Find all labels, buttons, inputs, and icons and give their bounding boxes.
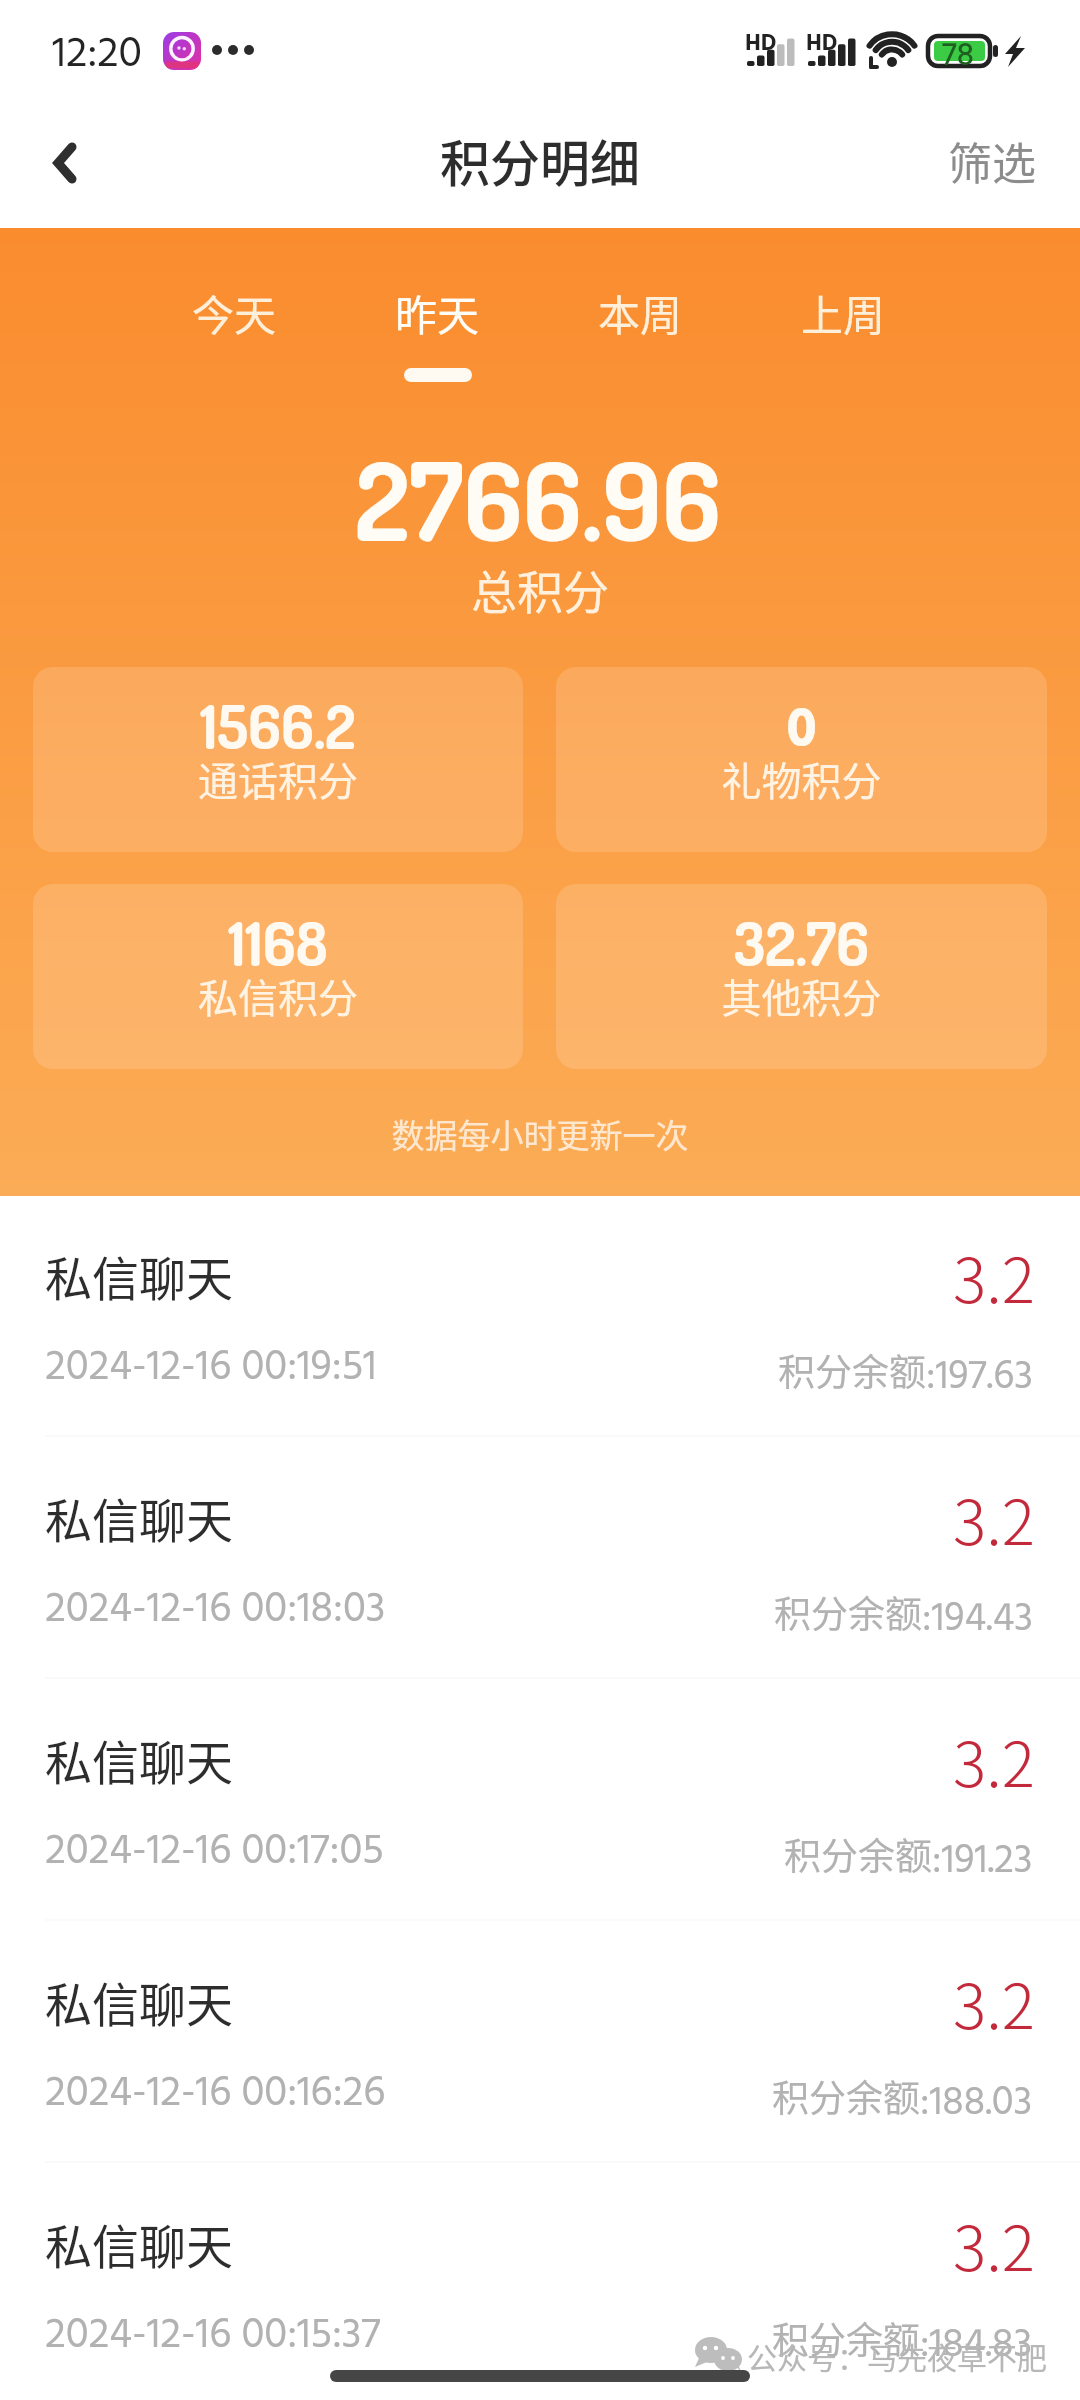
button[interactable]: 私信聊天 xyxy=(0,1680,1080,1922)
staticText: 积分明细 xyxy=(440,124,640,196)
staticText: 私信聊天 xyxy=(45,1483,233,1551)
staticText: 0 xyxy=(556,687,1047,777)
button[interactable]: 32.76 xyxy=(556,884,1047,1069)
staticText: 今天 xyxy=(192,282,277,343)
staticText: 12:20 xyxy=(52,21,142,90)
staticText: HD xyxy=(745,26,777,63)
staticText: 2024-12-16 00:17:05 xyxy=(45,1819,384,1886)
staticText: 3.2 xyxy=(953,1715,1035,1805)
staticText: 本周 xyxy=(598,282,683,343)
staticText: 私信积分 xyxy=(33,967,523,1025)
staticText: 数据每小时更新一次 xyxy=(0,1110,1080,1158)
button[interactable]: 本周 xyxy=(562,282,718,400)
staticText: 积分余额 xyxy=(772,2069,920,2123)
staticText: 私信聊天 xyxy=(45,2209,233,2277)
staticText: 昨天 xyxy=(395,282,480,343)
staticText: 私信聊天 xyxy=(45,1725,233,1793)
staticText: 3.2 xyxy=(953,1473,1035,1563)
staticText: :191.23 xyxy=(932,1830,1033,1894)
staticText: 2024-12-16 00:18:03 xyxy=(45,1577,386,1644)
staticText: 私信聊天 xyxy=(45,1241,233,1309)
staticText: 其他积分 xyxy=(556,967,1047,1025)
staticText: 积分余额 xyxy=(774,1585,922,1639)
staticText: 1566.2 xyxy=(33,687,523,763)
button[interactable]: 1566.2 xyxy=(33,667,523,852)
button[interactable]: 昨天 xyxy=(359,282,515,400)
button[interactable]: 今天 xyxy=(156,282,312,400)
button[interactable]: 私信聊天 xyxy=(0,1438,1080,1680)
button[interactable]: 0 xyxy=(556,667,1047,852)
staticText: 通话积分 xyxy=(33,750,523,808)
staticText: 2766.96 xyxy=(0,430,1078,567)
staticText: 公众号：马先夜草不肥 xyxy=(747,2334,1047,2377)
staticText: 私信聊天 xyxy=(45,1967,233,2035)
staticText: 1168 xyxy=(33,904,523,980)
staticText: 2024-12-16 00:19:51 xyxy=(45,1335,377,1402)
staticText: 3.2 xyxy=(953,1231,1035,1321)
staticText: :197.63 xyxy=(926,1346,1033,1410)
button[interactable]: 私信聊天 xyxy=(0,1922,1080,2164)
staticText: :194.43 xyxy=(922,1588,1033,1652)
staticText: HD xyxy=(806,26,838,63)
staticText: 32.76 xyxy=(556,904,1047,980)
button[interactable]: 1168 xyxy=(33,884,523,1069)
button[interactable]: 筛选 xyxy=(900,106,1080,228)
staticText: 总积分 xyxy=(0,556,1080,623)
staticText: 礼物积分 xyxy=(556,750,1047,808)
staticText: 3.2 xyxy=(953,1957,1035,2047)
staticText: 积分余额 xyxy=(784,1827,932,1881)
staticText: 积分余额 xyxy=(772,2311,920,2365)
button[interactable]: 私信聊天 xyxy=(0,2164,1080,2400)
button[interactable]: Back xyxy=(10,106,128,228)
staticText: 2024-12-16 00:16:26 xyxy=(45,2061,386,2128)
staticText: 上周 xyxy=(801,282,886,343)
staticText: 筛选 xyxy=(948,129,1036,193)
staticText: 78 xyxy=(942,31,974,82)
staticText: 2024-12-16 00:15:37 xyxy=(45,2303,381,2370)
staticText: :184.83 xyxy=(920,2314,1033,2378)
staticText: 积分余额 xyxy=(778,1343,926,1397)
button[interactable]: 上周 xyxy=(765,282,921,400)
button[interactable]: 私信聊天 xyxy=(0,1196,1080,1438)
staticText: 3.2 xyxy=(953,2199,1035,2289)
staticText: :188.03 xyxy=(920,2072,1033,2136)
